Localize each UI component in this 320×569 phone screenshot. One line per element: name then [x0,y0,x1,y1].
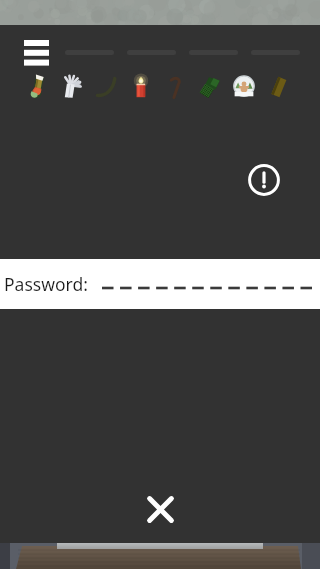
button[interactable]: Green brush [193,70,227,104]
button[interactable]: Crescent [90,70,124,104]
button[interactable]: Snow globe [227,70,261,104]
button[interactable]: Candle [124,70,158,104]
button[interactable]: Stocking [21,70,55,104]
button[interactable]: Hint [244,160,284,200]
button[interactable]: Cane [159,70,193,104]
button[interactable]: Wood block [262,70,296,104]
button[interactable]: Menu [17,34,55,72]
staticText: Password: [4,272,88,296]
button[interactable]: Feather duster [55,70,89,104]
button[interactable]: Close [140,489,180,529]
